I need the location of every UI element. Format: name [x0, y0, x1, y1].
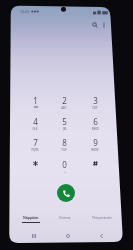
button[interactable]: 3: [81, 95, 109, 116]
staticText: Näppäim.: [23, 215, 40, 220]
staticText: 7: [33, 137, 38, 148]
button[interactable]: 4: [21, 116, 49, 137]
staticText: 3: [93, 95, 98, 106]
staticText: TUV: [61, 148, 67, 152]
button[interactable]: Back: [96, 231, 106, 241]
staticText: MNO: [92, 127, 99, 131]
button[interactable]: 7: [21, 137, 49, 158]
staticText: WXYZ: [91, 148, 99, 152]
staticText: JKL: [63, 127, 67, 131]
staticText: 12:45: [20, 9, 30, 14]
staticText: GHI: [32, 127, 38, 131]
staticText: Viimeis.: [59, 215, 72, 220]
staticText: 8: [62, 137, 67, 148]
staticText: 9: [93, 137, 98, 148]
button[interactable]: [21, 159, 49, 180]
staticText: 0: [62, 159, 67, 170]
staticText: 1: [33, 95, 38, 106]
button[interactable]: 6: [81, 116, 109, 137]
button[interactable]: Call: [57, 184, 75, 202]
staticText: PQRS: [31, 148, 39, 152]
staticText: +: [64, 170, 66, 174]
button[interactable]: 1: [21, 95, 49, 116]
button[interactable]: More options: [99, 20, 109, 30]
button[interactable]: Näppäim.: [15, 215, 47, 229]
staticText: 4: [33, 116, 38, 127]
button[interactable]: 2: [50, 95, 78, 116]
button[interactable]: 0: [50, 159, 78, 180]
staticText: ABC: [61, 106, 67, 110]
button[interactable]: Home: [63, 231, 73, 241]
button[interactable]: Search: [90, 20, 100, 30]
button[interactable]: 8: [50, 137, 78, 158]
button[interactable]: Viimeis.: [49, 215, 81, 229]
staticText: DEF: [92, 106, 98, 110]
button[interactable]: Recents: [29, 231, 39, 241]
button[interactable]: 9: [81, 137, 109, 158]
staticText: 6: [93, 116, 98, 127]
staticText: 5: [62, 116, 67, 127]
staticText: Yhteystiedot: [92, 215, 112, 220]
button[interactable]: 5: [50, 116, 78, 137]
button[interactable]: Yhteystiedot: [86, 215, 118, 229]
staticText: 2: [62, 95, 67, 106]
button[interactable]: [81, 159, 109, 180]
